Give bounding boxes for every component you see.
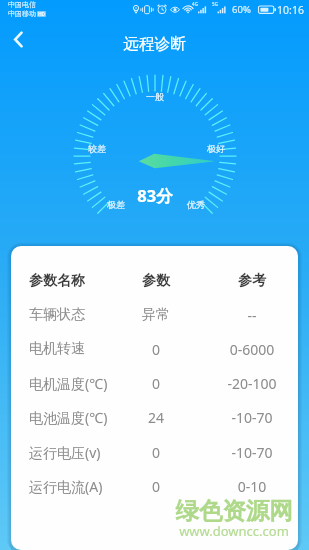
button[interactable]: Back (1, 21, 37, 57)
staticText: 运行电流(A) (29, 477, 103, 496)
button[interactable]: 电池温度(℃) (11, 404, 298, 430)
staticText: 运行电压(v) (29, 443, 101, 462)
staticText: 异常 (97, 306, 215, 324)
staticText: 83分 (125, 184, 185, 207)
staticText: 绿色资源网 (171, 496, 297, 526)
staticText: 极差 (96, 199, 136, 210)
staticText: 5G (212, 1, 218, 7)
staticText: 参数名称 (29, 272, 85, 290)
staticText: 10:16 (277, 3, 304, 17)
staticText: 中国移动 (8, 9, 36, 18)
button[interactable]: 车辆状态 (11, 302, 298, 328)
staticText: 车辆状态 (29, 306, 85, 324)
button[interactable]: 运行电压(v) (11, 439, 298, 465)
staticText: 60% (232, 3, 251, 16)
staticText: 参数 (97, 272, 215, 290)
staticText: 电机温度(℃) (29, 374, 108, 393)
staticText: -20-100 (216, 374, 288, 393)
staticText: 4G (192, 1, 198, 7)
staticText: 0 (97, 340, 215, 359)
button[interactable]: 参数名称 (11, 268, 298, 294)
button[interactable]: 运行电流(A) (11, 473, 298, 499)
staticText: 0 (97, 374, 215, 393)
staticText: 中国电信 (8, 0, 36, 9)
staticText: 电池温度(℃) (29, 408, 108, 427)
staticText: -10-70 (216, 408, 288, 427)
staticText: -10-70 (216, 443, 288, 462)
staticText: 较差 (77, 143, 117, 154)
staticText: 0-10 (216, 477, 288, 496)
staticText: 0 (97, 477, 215, 496)
button[interactable]: 电机转速 (11, 336, 298, 362)
staticText: -- (216, 306, 288, 325)
staticText: 0 (97, 443, 215, 462)
staticText: 电机转速 (29, 340, 85, 358)
staticText: 一般 (135, 91, 175, 102)
staticText: 远程诊断 (0, 34, 309, 54)
staticText: www.downcc.com (171, 522, 297, 540)
staticText: HD (38, 11, 45, 17)
staticText: 极好 (196, 143, 236, 154)
button[interactable]: 电机温度(℃) (11, 370, 298, 396)
staticText: 优秀 (176, 199, 216, 210)
staticText: 0-6000 (216, 340, 288, 359)
staticText: 24 (97, 408, 215, 427)
staticText: 参考 (216, 272, 288, 290)
